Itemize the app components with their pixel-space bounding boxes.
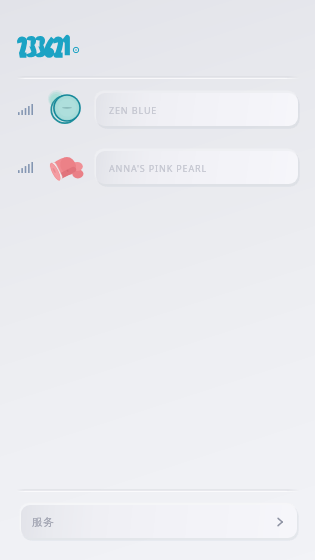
button[interactable]: ZEN BLUE [96, 93, 298, 126]
other: More services [272, 514, 288, 530]
other: Signal strength [18, 104, 33, 115]
button[interactable]: ANNA'S PINK PEARL [96, 151, 298, 184]
staticText: 服务 [32, 515, 54, 529]
other: Signal strength [18, 162, 33, 173]
button[interactable]: 服务 [21, 505, 297, 538]
staticText: ZEN BLUE [109, 104, 158, 116]
staticText: ANNA'S PINK PEARL [109, 162, 208, 174]
